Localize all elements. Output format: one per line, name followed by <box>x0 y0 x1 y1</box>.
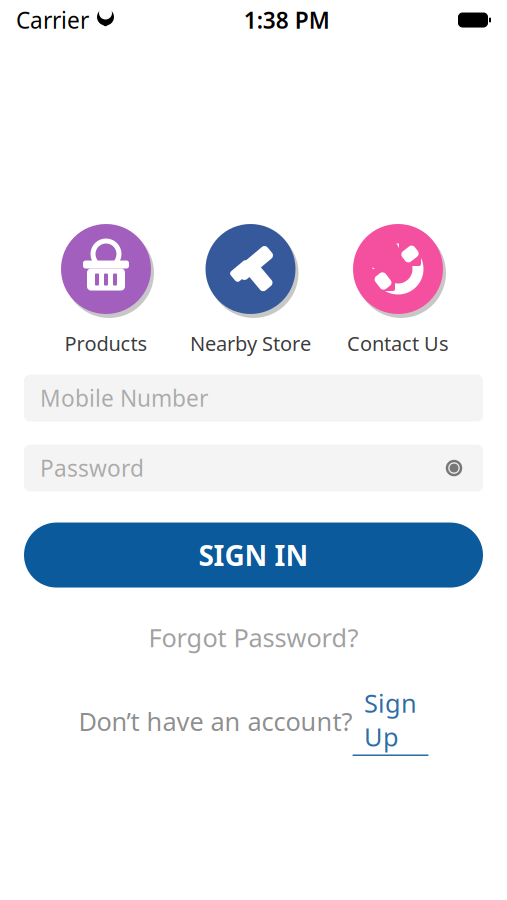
button[interactable]: Sign Up <box>352 686 428 756</box>
staticText: SIGN IN <box>198 536 308 574</box>
staticText: 1:38 PM <box>244 5 330 35</box>
button[interactable]: Contact Us <box>347 221 449 357</box>
staticText: Products <box>64 330 147 357</box>
button[interactable]: Products <box>58 221 154 357</box>
button[interactable]: SIGN IN <box>24 523 483 588</box>
staticText: Forgot Password? <box>148 621 358 654</box>
staticText: Sign Up <box>364 686 417 753</box>
button[interactable]: Mobile Number <box>24 375 483 422</box>
staticText: Contact Us <box>347 330 449 357</box>
staticText: Password <box>40 453 144 483</box>
staticText: Nearby Store <box>190 330 311 357</box>
button[interactable]: Forgot Password? <box>138 617 368 658</box>
button[interactable]: Password <box>24 445 483 492</box>
button[interactable]: Nearby Store <box>190 221 311 357</box>
staticText: Carrier <box>16 5 89 35</box>
staticText: Don’t have an account? <box>78 704 352 738</box>
staticText: Mobile Number <box>40 383 208 413</box>
